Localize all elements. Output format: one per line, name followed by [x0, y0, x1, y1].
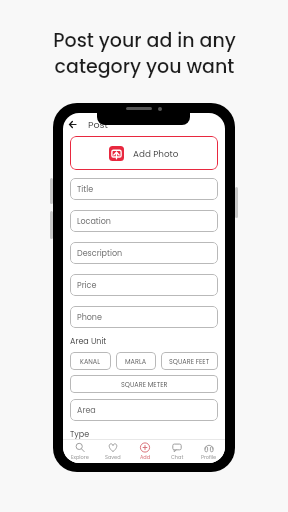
staticText: SQUARE FEET — [169, 357, 210, 366]
button[interactable]: Title — [70, 178, 218, 200]
staticText: Add Photo — [133, 148, 179, 160]
staticText: KANAL — [80, 357, 101, 366]
button[interactable]: Location — [70, 210, 218, 232]
staticText: MARLA — [125, 357, 147, 366]
staticText: Chat — [171, 454, 184, 461]
staticText: Post — [88, 118, 108, 131]
staticText: Location — [77, 216, 111, 227]
button[interactable]: Add — [129, 440, 161, 463]
staticText: Saved — [105, 454, 121, 461]
button[interactable]: Chat — [161, 440, 193, 463]
button[interactable]: Price — [70, 274, 218, 296]
staticText: Post your ad in any category you want — [53, 27, 236, 79]
button[interactable]: MARLA — [116, 352, 156, 370]
button[interactable]: KANAL — [70, 352, 111, 370]
button[interactable]: Profile — [193, 440, 225, 463]
button[interactable]: Phone — [70, 306, 218, 328]
button[interactable]: Saved — [96, 440, 129, 463]
staticText: Add — [140, 454, 151, 461]
button[interactable]: Description — [70, 242, 218, 264]
button[interactable]: SQUARE FEET — [161, 352, 218, 370]
staticText: SQUARE METER — [121, 380, 168, 389]
button[interactable]: Explore — [63, 440, 96, 463]
button[interactable]: Area — [70, 399, 218, 421]
staticText: Explore — [71, 454, 89, 461]
button[interactable]: Back — [66, 118, 79, 131]
staticText: Price — [77, 280, 97, 291]
staticText: Phone — [77, 312, 102, 323]
staticText: Profile — [201, 454, 217, 461]
staticText: Area — [77, 405, 96, 416]
button[interactable]: Add Photo — [70, 136, 218, 170]
staticText: Description — [77, 248, 123, 259]
staticText: Type — [70, 429, 90, 440]
staticText: Area Unit — [70, 336, 107, 347]
staticText: Title — [77, 184, 94, 195]
button[interactable]: SQUARE METER — [70, 375, 218, 393]
